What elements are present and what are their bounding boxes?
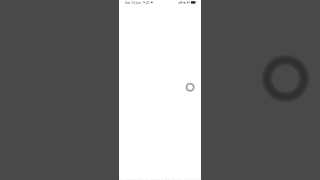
staticText: Sat 14 Jun 9:41 [125, 0, 150, 5]
staticText: By continuing you agree to the Terms of … [119, 177, 201, 180]
